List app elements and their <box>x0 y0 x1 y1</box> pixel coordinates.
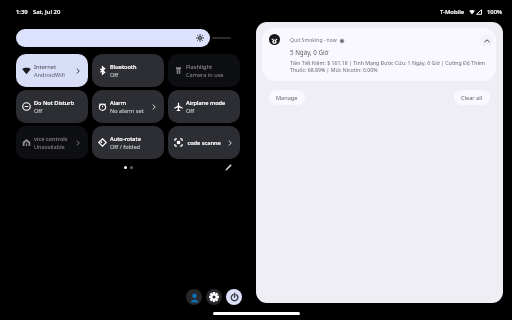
button[interactable]: code scanne <box>168 126 240 159</box>
button[interactable] <box>16 29 210 47</box>
staticText: No alarm set <box>110 107 144 115</box>
button[interactable]: Collapse <box>480 34 493 47</box>
staticText: Do Not Disturb <box>34 99 75 107</box>
staticText: code scanne <box>186 139 221 147</box>
staticText: Clear all <box>461 94 483 102</box>
button[interactable]: Clear all <box>454 90 490 105</box>
button[interactable]: vice controls <box>16 126 88 159</box>
button[interactable]: Internet <box>16 54 88 87</box>
staticText: Off <box>34 107 43 115</box>
staticText: 5 Ngày, 0 Giờ <box>290 48 329 56</box>
staticText: Alarm <box>110 99 127 107</box>
staticText: T-Mobile <box>440 8 465 16</box>
staticText: Off / folded <box>110 143 140 151</box>
staticText: Internet <box>34 63 57 71</box>
button[interactable]: Bluetooth <box>92 54 164 87</box>
staticText: Unavailable <box>34 143 65 151</box>
button[interactable]: Settings <box>206 289 222 305</box>
staticText: Manage <box>276 94 298 102</box>
button[interactable]: Quit Smoking · now <box>262 28 496 81</box>
button[interactable]: Account <box>186 289 202 305</box>
staticText: Tiền Tiết Kiệm: $ 161.18 | Tính Mạng Đượ… <box>290 59 488 74</box>
button[interactable]: Flashlight <box>168 54 240 87</box>
staticText: Camera in use <box>186 71 224 79</box>
button[interactable]: Airplane mode <box>168 90 240 123</box>
staticText: Bluetooth <box>110 63 137 71</box>
staticText: 100% <box>487 8 503 16</box>
staticText: Quit Smoking · now <box>290 37 337 44</box>
staticText: vice controls <box>34 135 68 143</box>
button[interactable]: Power <box>226 289 242 305</box>
staticText: Off <box>186 107 195 115</box>
button[interactable]: Manage <box>269 90 305 105</box>
staticText: 1:39 <box>16 8 28 16</box>
staticText: Airplane mode <box>186 99 226 107</box>
staticText: AndroidWifi <box>34 71 65 79</box>
staticText: Auto-rotate <box>110 135 141 143</box>
staticText: Off <box>110 71 119 79</box>
button[interactable]: Edit tiles <box>221 161 235 173</box>
button[interactable]: Auto-rotate <box>92 126 164 159</box>
button[interactable]: Do Not Disturb <box>16 90 88 123</box>
staticText: Sat, Jul 20 <box>33 8 61 16</box>
staticText: Flashlight <box>186 63 213 71</box>
button[interactable]: Alarm <box>92 90 164 123</box>
